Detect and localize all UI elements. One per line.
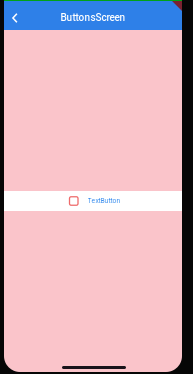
button[interactable]: Back [5, 0, 27, 30]
staticText: TextButton [87, 197, 120, 205]
staticText: ButtonsScreen [60, 12, 125, 23]
button[interactable]: TextButton [4, 191, 182, 211]
